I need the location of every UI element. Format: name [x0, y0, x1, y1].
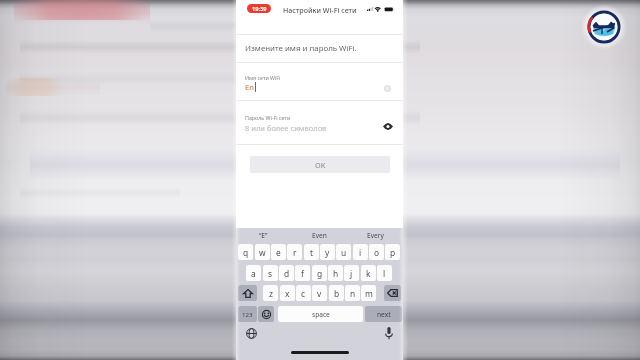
- staticText: n: [350, 288, 356, 299]
- button[interactable]: h: [328, 265, 343, 281]
- staticText: 123: [242, 310, 253, 318]
- button[interactable]: Change keyboard language: [246, 328, 257, 339]
- button[interactable]: next: [365, 306, 402, 322]
- button[interactable]: 123: [238, 306, 257, 322]
- staticText: h: [333, 268, 339, 279]
- button[interactable]: f: [295, 265, 310, 281]
- staticText: p: [390, 247, 396, 258]
- button[interactable]: Show password: [383, 123, 393, 130]
- button[interactable]: l: [377, 265, 392, 281]
- staticText: o: [374, 247, 380, 258]
- staticText: Измените имя и пароль WiFi.: [245, 43, 357, 54]
- button[interactable]: Emoji keyboard: [258, 306, 274, 322]
- button[interactable]: OK: [250, 156, 390, 173]
- button[interactable]: e: [271, 244, 286, 260]
- staticText: v: [317, 288, 322, 299]
- staticText: l: [383, 268, 386, 279]
- button[interactable]: n: [345, 285, 360, 301]
- button[interactable]: d: [279, 265, 294, 281]
- staticText: Настройки Wi-Fi сети: [283, 5, 357, 15]
- staticText: r: [293, 247, 297, 258]
- button[interactable]: q: [238, 244, 253, 260]
- button[interactable]: u: [336, 244, 351, 260]
- button[interactable]: b: [329, 285, 344, 301]
- button[interactable]: y: [320, 244, 335, 260]
- staticText: Пароль Wi-Fi сети: [245, 114, 291, 121]
- button[interactable]: Clear text: [384, 85, 391, 92]
- staticText: c: [301, 288, 306, 299]
- staticText: x: [285, 288, 290, 299]
- button[interactable]: i: [353, 244, 368, 260]
- staticText: next: [377, 310, 391, 319]
- button[interactable]: m: [361, 285, 376, 301]
- staticText: “E”: [259, 231, 268, 240]
- staticText: En: [245, 82, 254, 92]
- button[interactable]: “E”: [236, 228, 291, 243]
- button[interactable]: w: [255, 244, 270, 260]
- staticText: s: [268, 268, 273, 279]
- button[interactable]: x: [280, 285, 295, 301]
- button[interactable]: t: [304, 244, 319, 260]
- staticText: w: [259, 247, 266, 258]
- staticText: Even: [312, 231, 327, 240]
- staticText: g: [317, 268, 323, 279]
- button[interactable]: Имя сети WiFi: [236, 63, 403, 100]
- button[interactable]: Backspace: [384, 285, 401, 301]
- button[interactable]: Every: [347, 228, 403, 243]
- button[interactable]: space: [278, 306, 363, 322]
- staticText: d: [284, 268, 290, 279]
- staticText: y: [325, 247, 330, 258]
- staticText: e: [276, 247, 281, 258]
- staticText: Имя сети WiFi: [245, 74, 281, 81]
- button[interactable]: z: [263, 285, 278, 301]
- staticText: k: [366, 268, 371, 279]
- button[interactable]: Пароль Wi-Fi сети: [236, 101, 403, 144]
- staticText: q: [243, 247, 249, 258]
- staticText: j: [350, 268, 353, 279]
- staticText: t: [310, 247, 314, 258]
- staticText: Every: [367, 231, 384, 240]
- button[interactable]: r: [287, 244, 302, 260]
- staticText: f: [301, 268, 304, 279]
- other: Channel logo: [582, 5, 626, 49]
- button[interactable]: Dictate: [385, 327, 393, 340]
- button[interactable]: o: [369, 244, 384, 260]
- staticText: space: [312, 310, 330, 319]
- button[interactable]: Shift: [238, 285, 257, 301]
- staticText: m: [365, 288, 373, 299]
- staticText: 19:39: [252, 5, 267, 13]
- staticText: OK: [315, 160, 326, 170]
- button[interactable]: s: [263, 265, 278, 281]
- staticText: i: [359, 247, 362, 258]
- button[interactable]: Even: [291, 228, 347, 243]
- button[interactable]: v: [312, 285, 327, 301]
- button[interactable]: k: [361, 265, 376, 281]
- staticText: 8 или более символов: [245, 123, 327, 133]
- staticText: z: [269, 288, 273, 299]
- button[interactable]: g: [312, 265, 327, 281]
- button[interactable]: p: [385, 244, 400, 260]
- button[interactable]: a: [246, 265, 261, 281]
- button[interactable]: c: [296, 285, 311, 301]
- staticText: a: [251, 268, 256, 279]
- button[interactable]: j: [344, 265, 359, 281]
- staticText: b: [334, 288, 340, 299]
- staticText: u: [341, 247, 347, 258]
